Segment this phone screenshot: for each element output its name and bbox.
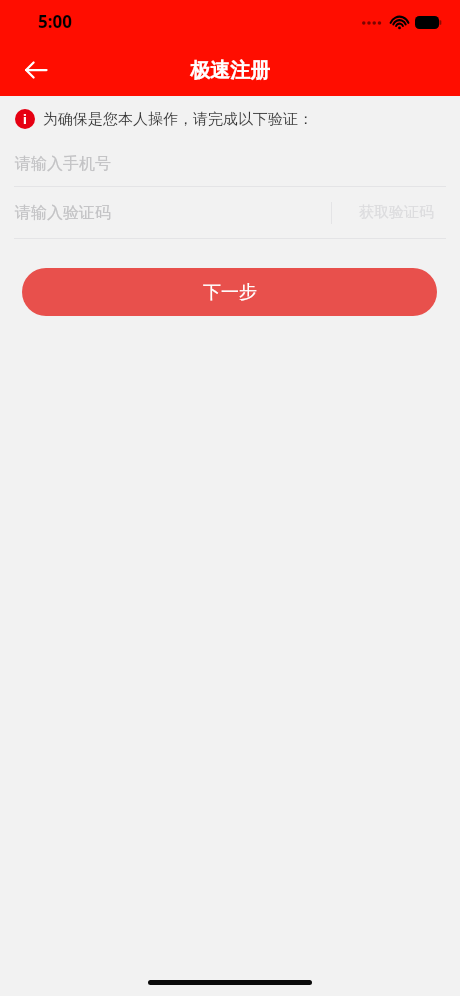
staticText: 为确保是您本人操作，请完成以下验证：: [43, 110, 313, 129]
button[interactable]: 请输入手机号: [0, 142, 460, 186]
staticText: 请输入验证码: [15, 203, 111, 223]
staticText: 极速注册: [190, 58, 270, 83]
staticText: 下一步: [203, 281, 257, 304]
button[interactable]: Back: [12, 46, 60, 94]
staticText: 请输入手机号: [15, 154, 111, 174]
staticText: i: [23, 110, 27, 128]
button[interactable]: 获取验证码: [332, 187, 460, 238]
button[interactable]: 下一步: [22, 268, 437, 316]
staticText: 获取验证码: [359, 203, 434, 222]
button[interactable]: 请输入验证码: [0, 187, 331, 238]
staticText: 5:00: [38, 10, 72, 33]
